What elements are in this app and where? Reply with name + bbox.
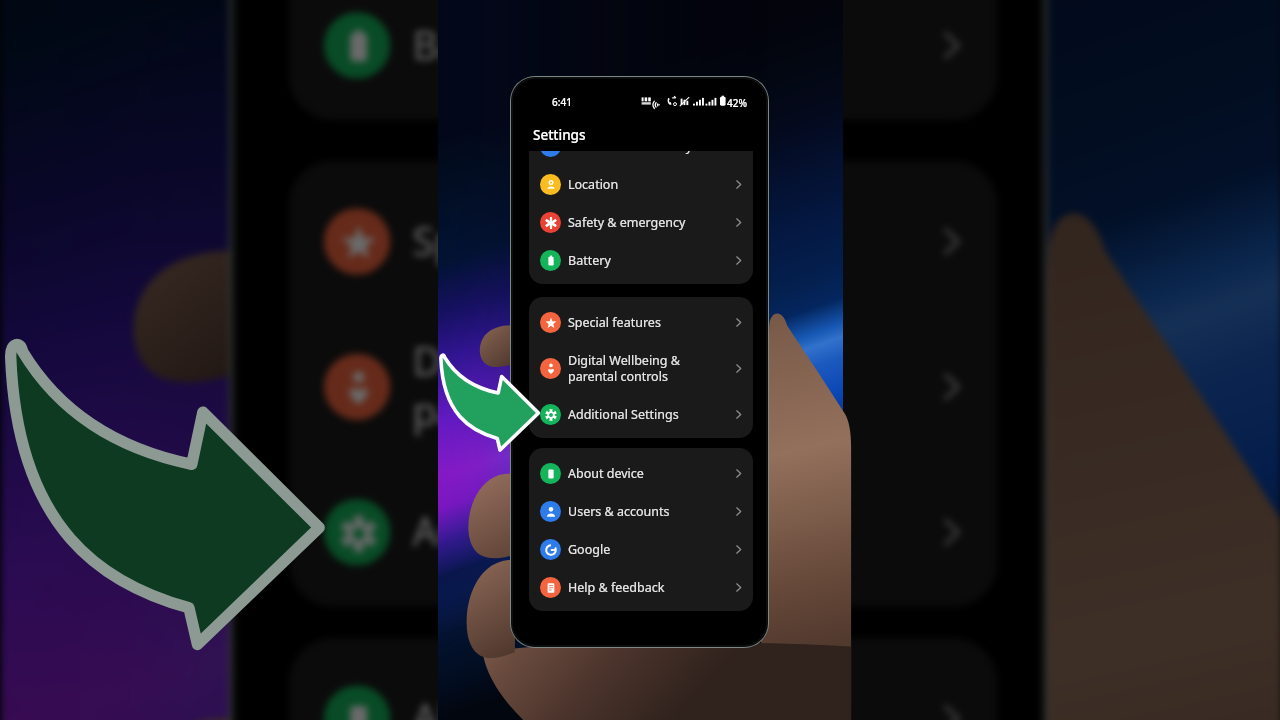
staticText: Special features xyxy=(568,314,661,331)
staticText: Digital Wellbeing & parental controls xyxy=(568,352,680,384)
staticText: About device xyxy=(568,465,644,482)
button[interactable]: Special features xyxy=(289,180,997,300)
button[interactable]: About device xyxy=(529,454,753,492)
button[interactable]: Additional Settings xyxy=(529,395,753,433)
button[interactable]: Battery xyxy=(529,241,753,279)
staticText: 6:41 xyxy=(552,95,572,109)
button[interactable]: Special features xyxy=(529,303,753,341)
button[interactable]: Digital Wellbeing & parental controls xyxy=(289,300,997,471)
staticText: Battery xyxy=(412,19,548,72)
staticText: Users & accounts xyxy=(568,503,670,520)
button[interactable]: Users & accounts xyxy=(529,492,753,530)
staticText: Digital Wellbeing & parental controls xyxy=(412,335,766,436)
staticText: Settings xyxy=(533,126,586,144)
staticText: Additional Settings xyxy=(412,505,763,559)
button[interactable]: Safety & emergency xyxy=(529,203,753,241)
button[interactable]: Digital Wellbeing & parental controls xyxy=(529,341,753,395)
button[interactable]: Google xyxy=(529,530,753,568)
staticText: Additional Settings xyxy=(568,406,679,423)
staticText: Battery xyxy=(568,252,611,269)
staticText: Passwords & security xyxy=(568,151,693,155)
staticText: About device xyxy=(412,692,653,720)
button[interactable]: Help & feedback xyxy=(529,568,753,606)
staticText: 42% xyxy=(727,96,747,110)
staticText: Help & feedback xyxy=(568,579,665,596)
staticText: Location xyxy=(568,176,619,193)
button[interactable]: Battery xyxy=(289,0,997,104)
button[interactable]: About device xyxy=(289,657,997,720)
staticText: Special features xyxy=(412,215,706,268)
staticText: Safety & emergency xyxy=(568,214,686,231)
button[interactable]: Location xyxy=(529,165,753,203)
button[interactable]: Additional Settings xyxy=(289,471,997,591)
button[interactable]: Passwords & security xyxy=(529,151,753,165)
staticText: Google xyxy=(568,541,611,558)
